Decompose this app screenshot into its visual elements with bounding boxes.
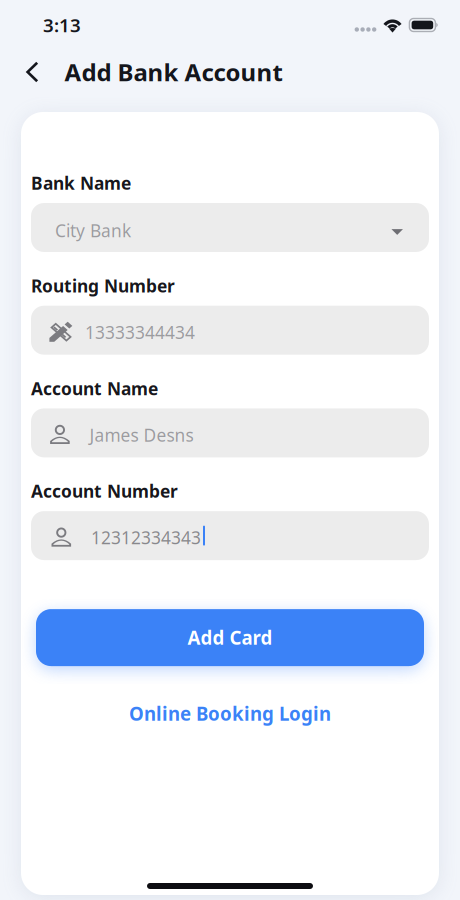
button[interactable]: Add Card bbox=[31, 609, 429, 666]
staticText: Online Booking Login bbox=[129, 701, 331, 726]
staticText: City Bank bbox=[55, 219, 131, 242]
staticText: Account Number bbox=[31, 480, 178, 503]
staticText: 12312334343 bbox=[91, 526, 201, 549]
staticText: 13333344434 bbox=[85, 321, 195, 344]
staticText: Routing Number bbox=[31, 274, 175, 297]
button[interactable]: 12312334343 bbox=[31, 511, 429, 560]
button[interactable]: Online Booking Login bbox=[117, 695, 343, 732]
button[interactable]: Back bbox=[0, 53, 65, 91]
staticText: 3:13 bbox=[43, 13, 81, 37]
button[interactable]: City Bank bbox=[31, 203, 429, 252]
staticText: James Desns bbox=[90, 423, 194, 446]
staticText: Bank Name bbox=[31, 171, 131, 194]
button[interactable]: James Desns bbox=[31, 408, 429, 457]
staticText: Add Card bbox=[187, 625, 272, 650]
staticText: Add Bank Account bbox=[65, 56, 283, 88]
staticText: Account Name bbox=[31, 377, 158, 400]
button[interactable]: 13333344434 bbox=[31, 306, 429, 355]
